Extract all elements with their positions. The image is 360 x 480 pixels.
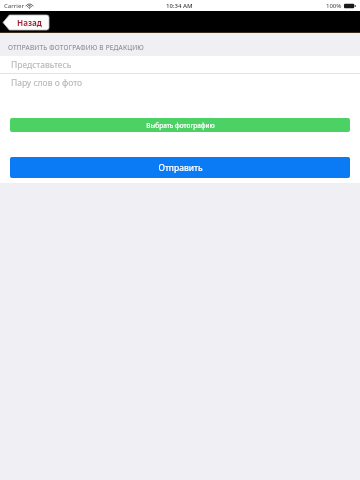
- staticText: Назад: [17, 17, 42, 28]
- button[interactable]: Отправить: [10, 157, 350, 178]
- staticText: Отправить: [158, 162, 203, 174]
- button[interactable]: Представьтесь: [0, 56, 360, 73]
- staticText: 100%: [326, 2, 342, 10]
- staticText: Carrier: [4, 2, 24, 10]
- staticText: ОТПРАВИТЬ ФОТОГРАФИЮ В РЕДАКЦИЮ: [8, 43, 144, 52]
- staticText: Представьтесь: [11, 59, 72, 71]
- staticText: Выбрать фотографию: [146, 121, 215, 130]
- button[interactable]: Пару слов о фото: [0, 74, 360, 118]
- staticText: 10:34 AM: [166, 2, 193, 10]
- staticText: Пару слов о фото: [11, 77, 83, 89]
- button[interactable]: Выбрать фотографию: [10, 118, 350, 132]
- button[interactable]: Назад: [3, 15, 49, 30]
